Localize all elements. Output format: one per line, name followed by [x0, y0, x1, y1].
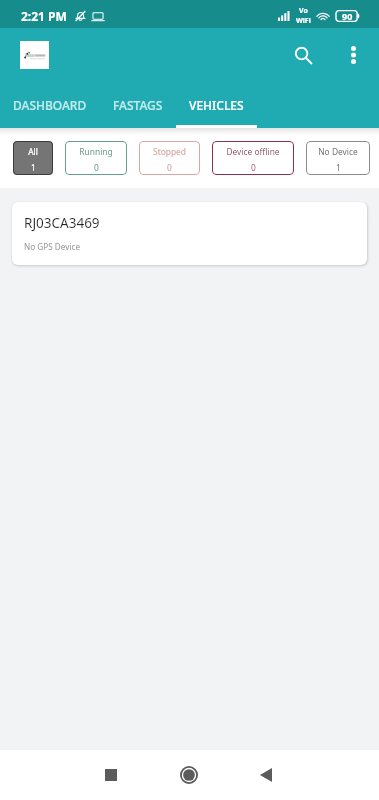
staticText: 1: [31, 162, 36, 173]
button[interactable]: DASHBOARD: [0, 86, 100, 128]
staticText: No Device: [318, 146, 358, 157]
button[interactable]: All: [13, 141, 53, 175]
staticText: RJ03CA3469: [24, 214, 100, 232]
button[interactable]: App logo: [20, 41, 49, 69]
staticText: Device offline: [226, 146, 280, 157]
staticText: WiFi: [296, 16, 311, 26]
staticText: 90: [342, 10, 353, 22]
staticText: 0: [251, 162, 256, 173]
button[interactable]: Running: [65, 141, 127, 175]
button[interactable]: Recents: [91, 755, 131, 795]
button[interactable]: FASTAGS: [100, 86, 176, 128]
staticText: All: [28, 146, 38, 157]
staticText: Vo: [299, 6, 308, 16]
staticText: 2:21 PM: [21, 8, 67, 24]
button[interactable]: Search: [281, 33, 325, 77]
button[interactable]: Stopped: [139, 141, 200, 175]
staticText: No GPS Device: [24, 241, 81, 252]
staticText: Stopped: [153, 146, 186, 157]
staticText: VEHICLES: [189, 97, 244, 113]
staticText: DASHBOARD: [13, 97, 87, 113]
button[interactable]: Back: [246, 755, 286, 795]
button[interactable]: Device offline: [212, 141, 294, 175]
button[interactable]: VEHICLES: [176, 86, 257, 128]
staticText: 0: [167, 162, 172, 173]
staticText: 1: [336, 162, 341, 173]
button[interactable]: No Device: [306, 141, 370, 175]
button[interactable]: RJ03CA3469: [12, 202, 367, 265]
button[interactable]: Home: [169, 755, 209, 795]
staticText: Running: [79, 146, 113, 157]
staticText: 0: [94, 162, 99, 173]
button[interactable]: More options: [332, 34, 374, 76]
staticText: FASTAGS: [113, 97, 163, 113]
